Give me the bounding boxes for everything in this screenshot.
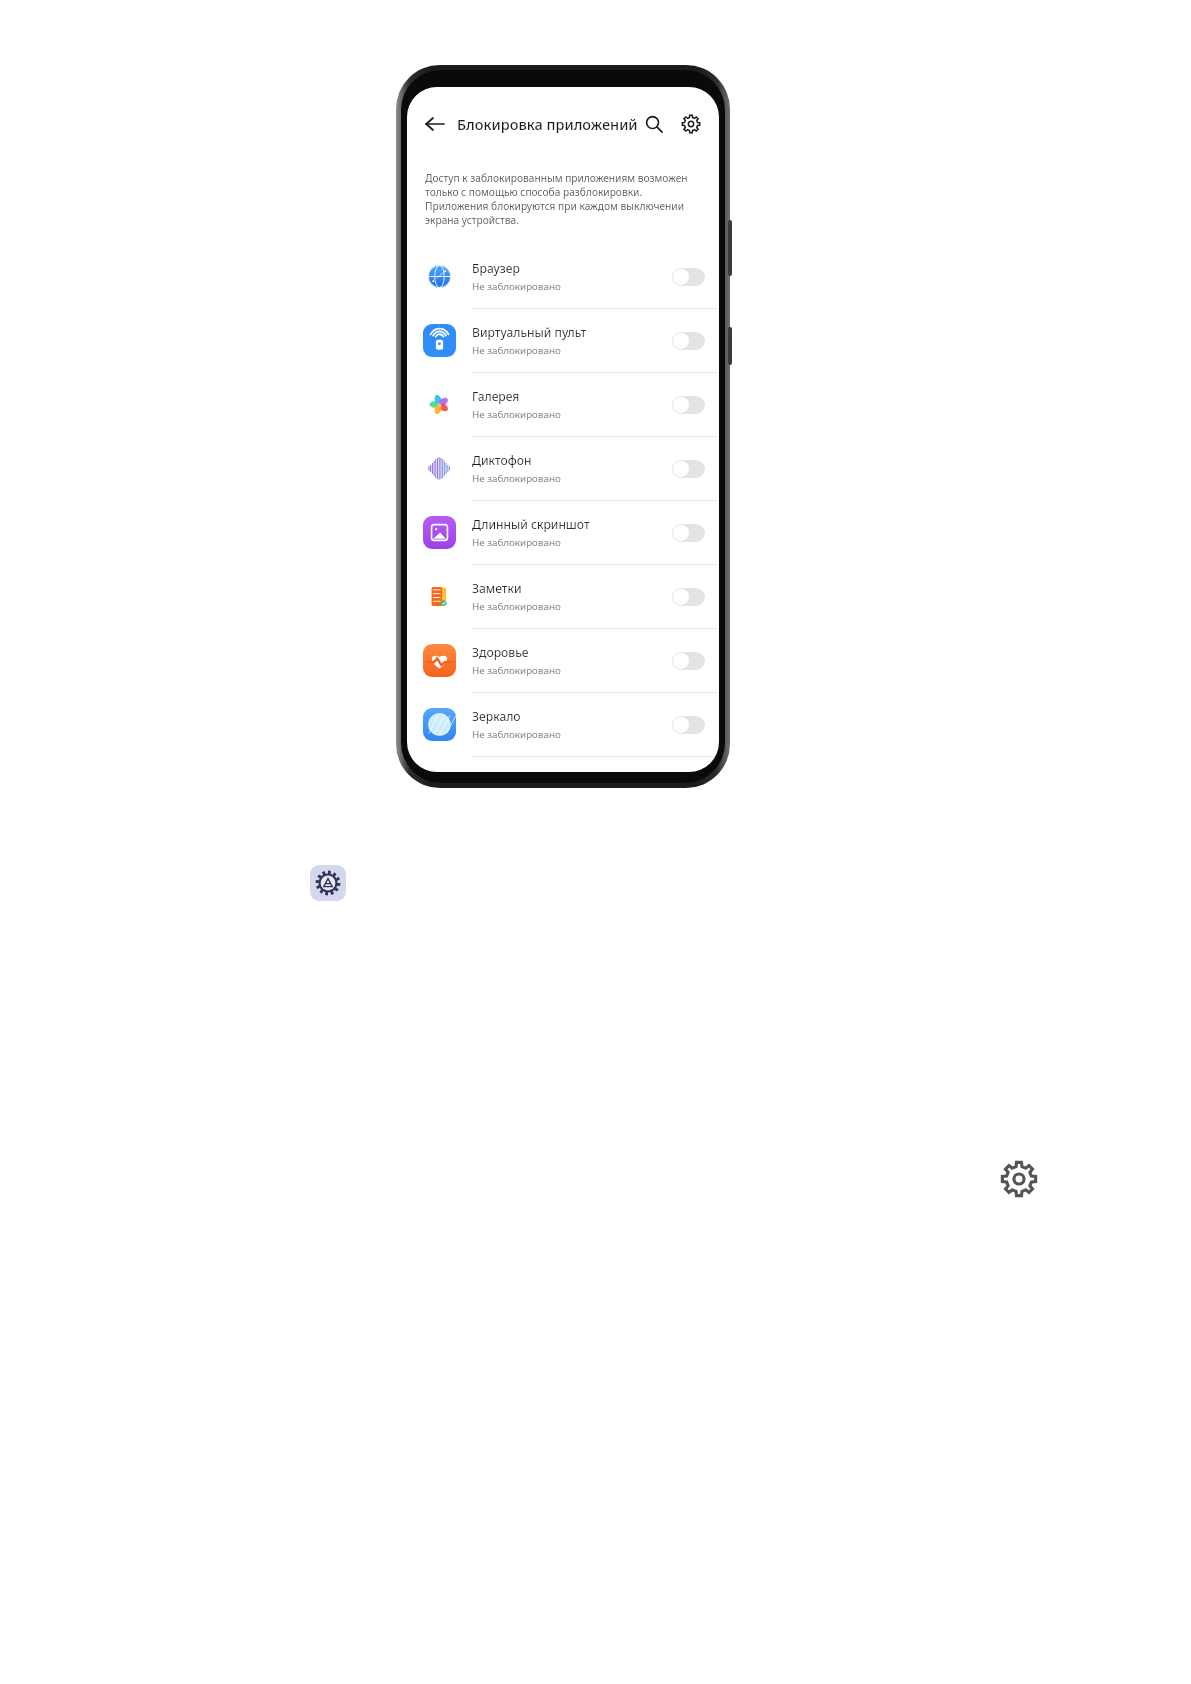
button[interactable]: Settings (677, 109, 705, 139)
staticText: Не заблокировано (472, 536, 561, 549)
staticText: Браузер (472, 260, 520, 277)
staticText: Диктофон (472, 452, 532, 469)
button[interactable]: Toggle lock for Диктофон (672, 460, 705, 478)
button[interactable]: Заметки (407, 565, 719, 629)
button[interactable]: Галерея (407, 373, 719, 437)
button[interactable]: Виртуальный пульт (407, 309, 719, 373)
button[interactable]: Диктофон (407, 437, 719, 501)
staticText: Доступ к заблокированным приложениям воз… (425, 171, 707, 227)
button[interactable]: Toggle lock for Зеркало (672, 716, 705, 734)
staticText: Виртуальный пульт (472, 324, 587, 341)
button[interactable]: Toggle lock for Здоровье (672, 652, 705, 670)
staticText: Не заблокировано (472, 408, 561, 421)
staticText: Не заблокировано (472, 600, 561, 613)
staticText: Не заблокировано (472, 728, 561, 741)
button[interactable]: Back (419, 108, 451, 140)
button[interactable]: Settings app (310, 865, 346, 901)
staticText: Здоровье (472, 644, 529, 661)
staticText: Не заблокировано (472, 280, 561, 293)
staticText: Не заблокировано (472, 472, 561, 485)
button[interactable]: Здоровье (407, 629, 719, 693)
button[interactable]: Toggle lock for Длинный скриншот (672, 524, 705, 542)
button[interactable]: Settings (998, 1158, 1040, 1200)
button[interactable]: Toggle lock for Браузер (672, 268, 705, 286)
staticText: Не заблокировано (472, 344, 561, 357)
staticText: Не заблокировано (472, 664, 561, 677)
button[interactable]: Длинный скриншот (407, 501, 719, 565)
staticText: Заметки (472, 580, 522, 597)
staticText: Блокировка приложений (457, 114, 638, 134)
staticText: Зеркало (472, 708, 521, 725)
staticText: Галерея (472, 388, 520, 405)
button[interactable]: Toggle lock for Виртуальный пульт (672, 332, 705, 350)
button[interactable]: Toggle lock for Галерея (672, 396, 705, 414)
button[interactable]: Search (639, 109, 669, 139)
button[interactable]: Toggle lock for Заметки (672, 588, 705, 606)
button[interactable]: Зеркало (407, 693, 719, 757)
staticText: Длинный скриншот (472, 516, 590, 533)
button[interactable]: Браузер (407, 245, 719, 309)
